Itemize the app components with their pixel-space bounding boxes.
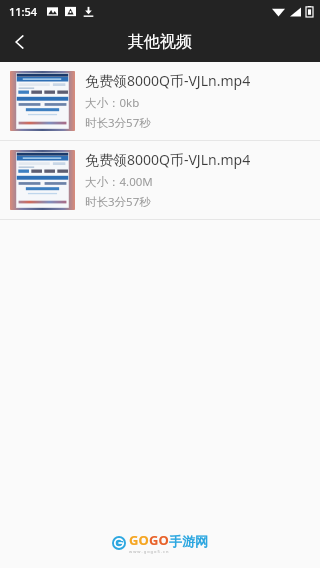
staticText: GO [149, 531, 169, 549]
staticText: GO [129, 531, 149, 549]
staticText: 免费领8000Q币-VJLn.mp4 [85, 150, 251, 169]
staticText: 手游网 [169, 533, 208, 549]
staticText: 其他视频 [128, 32, 192, 52]
button[interactable]: Back [0, 22, 40, 62]
staticText: 时长3分57秒 [85, 194, 151, 210]
staticText: w w w . g o g o 5 . c n [129, 549, 169, 554]
staticText: 大小：0kb [85, 95, 140, 111]
staticText: 免费领8000Q币-VJLn.mp4 [85, 71, 251, 90]
staticText: 大小：4.00M [85, 174, 153, 190]
staticText: 11:54 [9, 4, 38, 19]
staticText: 时长3分57秒 [85, 115, 151, 131]
button[interactable]: 免费领8000Q币-VJLn.mp4 [0, 62, 320, 140]
button[interactable]: 免费领8000Q币-VJLn.mp4 [0, 141, 320, 219]
